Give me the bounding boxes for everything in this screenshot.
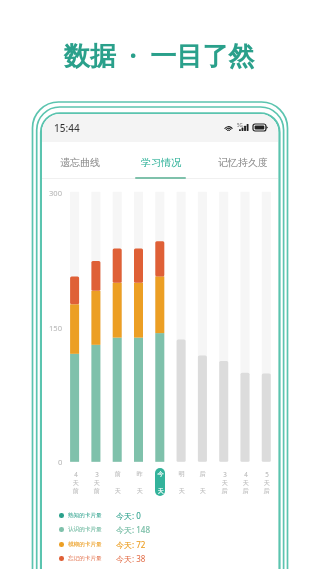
staticText: 遗忘曲线 [60, 156, 100, 169]
staticText: 熟知的卡片量 [68, 512, 102, 519]
staticText: 前 [72, 487, 79, 495]
staticText: 天 [199, 487, 206, 495]
staticText: 今 [157, 470, 164, 478]
button[interactable]: 4 [68, 468, 82, 498]
button[interactable]: 模糊的卡片量 [59, 539, 146, 549]
staticText: 150 [49, 323, 63, 333]
button[interactable]: 昨 [132, 468, 146, 498]
button[interactable]: 遗忘曲线 [47, 142, 113, 179]
staticText: 3 [223, 470, 227, 478]
button[interactable]: 记忆持久度 [210, 142, 276, 179]
button[interactable]: 3 [89, 468, 103, 498]
staticText: 数据 · 一目了然 [64, 37, 255, 73]
button[interactable]: 明 [174, 468, 188, 498]
staticText: 今天: 38 [116, 553, 146, 563]
button[interactable]: 熟知的卡片量 [59, 510, 141, 520]
staticText: 天 [72, 479, 79, 487]
staticText: 后 [263, 487, 270, 495]
button[interactable]: 4 [238, 468, 252, 498]
staticText: 300 [49, 188, 63, 198]
button[interactable]: 前 [110, 468, 124, 498]
button[interactable]: 忘记的卡片量 [59, 553, 146, 563]
staticText: 4 [244, 470, 248, 478]
staticText: 后 [199, 470, 206, 478]
staticText: 天 [114, 487, 121, 495]
button[interactable]: 后 [195, 468, 209, 498]
staticText: 明 [178, 470, 185, 478]
staticText: 今天: 148 [116, 524, 150, 534]
staticText: 前 [93, 487, 100, 495]
button[interactable]: 认识的卡片量 [59, 524, 150, 534]
button[interactable]: 学习情况 [128, 142, 194, 179]
staticText: 天 [178, 487, 185, 495]
staticText: 天 [136, 487, 143, 495]
staticText: 5G [237, 122, 243, 128]
staticText: 忘记的卡片量 [68, 555, 102, 562]
staticText: 天 [157, 487, 164, 495]
staticText: 天 [93, 479, 100, 487]
staticText: 4 [74, 470, 78, 478]
staticText: 今天: 72 [116, 539, 146, 549]
staticText: 0 [58, 457, 63, 467]
staticText: 认识的卡片量 [68, 526, 102, 533]
staticText: 天 [263, 479, 270, 487]
staticText: 学习情况 [141, 156, 181, 169]
button[interactable]: 今 [153, 468, 167, 498]
staticText: 天 [242, 479, 249, 487]
staticText: 后 [221, 487, 228, 495]
staticText: 今天: 0 [116, 510, 141, 520]
button[interactable]: 3 [217, 468, 231, 498]
staticText: 模糊的卡片量 [68, 541, 102, 548]
staticText: 前 [114, 470, 121, 478]
staticText: 后 [242, 487, 249, 495]
button[interactable]: 5 [259, 468, 273, 498]
staticText: 记忆持久度 [218, 156, 268, 169]
staticText: 3 [95, 470, 99, 478]
staticText: 5 [265, 470, 269, 478]
staticText: 15:44 [54, 121, 80, 135]
staticText: 昨 [136, 470, 143, 478]
staticText: 天 [221, 479, 228, 487]
